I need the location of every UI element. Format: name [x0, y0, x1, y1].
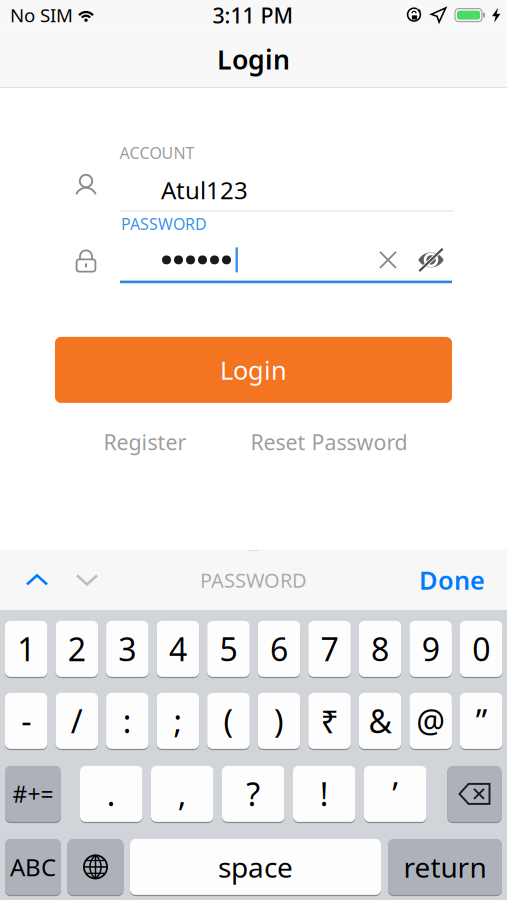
staticText: ;	[173, 700, 182, 742]
button[interactable]: Reset Password	[236, 425, 421, 459]
staticText: 6	[270, 628, 288, 670]
button[interactable]: /	[55, 692, 98, 749]
button[interactable]: 1	[5, 620, 47, 677]
button[interactable]: return	[388, 838, 502, 895]
button[interactable]: -	[5, 692, 47, 749]
staticText: !	[320, 773, 329, 815]
staticText: 7	[320, 628, 338, 670]
button[interactable]: ”	[460, 692, 502, 749]
staticText: :	[123, 700, 132, 742]
button[interactable]: ’	[364, 765, 426, 822]
staticText: PASSWORD	[121, 213, 207, 234]
button[interactable]: Login	[55, 337, 452, 403]
staticText: Login	[220, 353, 287, 387]
staticText: .	[107, 773, 116, 815]
button[interactable]: Register	[75, 425, 215, 459]
staticText: )	[274, 700, 284, 742]
staticText: /	[71, 700, 83, 742]
button[interactable]: ,	[151, 765, 213, 822]
button[interactable]: ₹	[308, 692, 351, 749]
staticText: @	[416, 700, 445, 742]
staticText: 8	[371, 628, 389, 670]
staticText: ₹	[320, 700, 338, 742]
button[interactable]: Delete	[447, 765, 502, 822]
staticText: &	[369, 700, 392, 742]
button[interactable]: 7	[308, 620, 351, 677]
staticText: Done	[419, 563, 485, 597]
button[interactable]: Show password	[411, 240, 451, 280]
staticText: 3	[118, 628, 136, 670]
button[interactable]: #+=	[5, 765, 61, 822]
staticText: ?	[246, 773, 260, 815]
button[interactable]: 6	[258, 620, 300, 677]
staticText: space	[218, 848, 293, 885]
staticText: Atul123	[161, 174, 248, 206]
button[interactable]: !	[293, 765, 355, 822]
staticText: 5	[219, 628, 237, 670]
button[interactable]: :	[106, 692, 149, 749]
button[interactable]: 4	[157, 620, 199, 677]
button[interactable]: Next keyboard	[67, 838, 123, 895]
staticText: ’	[392, 773, 398, 815]
button[interactable]: 3	[106, 620, 149, 677]
button[interactable]: )	[258, 692, 300, 749]
staticText: 0	[472, 628, 490, 670]
staticText: 4	[169, 628, 187, 670]
button[interactable]: &	[359, 692, 401, 749]
staticText: Reset Password	[250, 428, 407, 456]
staticText: Register	[103, 428, 186, 456]
button[interactable]	[67, 838, 123, 895]
staticText: -	[21, 700, 31, 742]
button[interactable]: 2	[55, 620, 98, 677]
button[interactable]: Next field	[64, 554, 110, 606]
staticText: ,	[178, 773, 187, 815]
button[interactable]: Previous field	[14, 554, 60, 606]
button[interactable]: space	[130, 838, 381, 895]
staticText: #+=	[12, 779, 53, 809]
staticText: 1	[17, 628, 35, 670]
staticText: 2	[68, 628, 86, 670]
staticText: ABC	[10, 851, 56, 883]
staticText: return	[403, 848, 486, 885]
staticText: No SIM	[10, 3, 73, 27]
button[interactable]: .	[80, 765, 142, 822]
button[interactable]: Done	[405, 554, 485, 606]
button[interactable]: 5	[207, 620, 250, 677]
button[interactable]: 8	[359, 620, 401, 677]
staticText: 9	[422, 628, 440, 670]
staticText: 3:11 PM	[212, 1, 293, 29]
button[interactable]: (	[207, 692, 250, 749]
button[interactable]: ABC	[5, 838, 61, 895]
staticText: ”	[476, 700, 487, 742]
button[interactable]: ;	[157, 692, 199, 749]
button[interactable]: 9	[409, 620, 452, 677]
staticText: Login	[217, 41, 290, 77]
button[interactable]: Clear password	[368, 240, 408, 280]
staticText: PASSWORD	[200, 567, 307, 593]
button[interactable]	[447, 765, 502, 822]
staticText: (	[223, 700, 233, 742]
staticText: ACCOUNT	[119, 142, 194, 163]
button[interactable]: @	[409, 692, 452, 749]
button[interactable]: ?	[222, 765, 284, 822]
button[interactable]: 0	[460, 620, 502, 677]
